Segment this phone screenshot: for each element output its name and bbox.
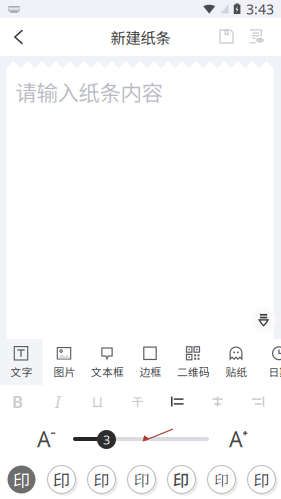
staticText: T — [133, 391, 141, 411]
button[interactable]: 图片 — [43, 339, 86, 385]
button[interactable]: B — [0, 387, 37, 415]
button[interactable]: Font style — [121, 462, 161, 496]
staticText: 图片 — [53, 364, 75, 379]
button[interactable]: 贴纸 — [215, 339, 258, 385]
staticText: 文字 — [10, 364, 32, 379]
button[interactable]: Align left — [157, 387, 197, 415]
button[interactable]: Font style — [1, 462, 41, 496]
staticText: 印 — [53, 467, 70, 492]
staticText: 日期 — [268, 364, 281, 379]
button[interactable]: Font style — [241, 462, 281, 496]
button[interactable]: Font style — [41, 462, 81, 496]
staticText: 文本框 — [91, 364, 124, 379]
staticText: 印 — [214, 469, 229, 490]
staticText: A — [229, 424, 243, 454]
button[interactable]: 文字 — [0, 339, 43, 385]
button[interactable]: Align center — [197, 387, 237, 415]
button[interactable]: 日期 — [258, 339, 281, 385]
button[interactable]: Font style — [201, 462, 241, 496]
button[interactable]: Font style — [81, 462, 121, 496]
button[interactable]: 文本框 — [86, 339, 129, 385]
button[interactable]: Align right — [237, 387, 277, 415]
button[interactable]: Collapse — [249, 306, 277, 334]
staticText: A — [37, 424, 51, 454]
staticText: 印 — [253, 468, 269, 491]
staticText: 印 — [13, 467, 30, 492]
staticText: 请输入纸条内容 — [15, 76, 162, 107]
staticText: I — [55, 390, 60, 413]
button[interactable]: Preview — [242, 20, 272, 54]
button[interactable]: Back — [0, 20, 34, 53]
button[interactable]: I — [37, 387, 77, 415]
button[interactable]: Font style — [161, 462, 201, 496]
staticText: U — [92, 391, 103, 411]
button[interactable]: Strikethrough — [117, 387, 157, 415]
staticText: 贴纸 — [225, 364, 247, 379]
staticText: 二维码 — [177, 364, 210, 379]
button[interactable]: Save — [212, 20, 242, 54]
staticText: 印 — [173, 467, 190, 491]
staticText: B — [12, 390, 23, 413]
button[interactable]: 边框 — [129, 339, 172, 385]
staticText: 新建纸条 — [110, 26, 170, 48]
button[interactable]: Underline — [77, 387, 117, 415]
staticText: 印 — [93, 468, 109, 491]
staticText: 3 — [103, 431, 110, 448]
staticText: 3:43 — [246, 0, 274, 19]
staticText: 边框 — [139, 364, 161, 379]
button[interactable]: 二维码 — [172, 339, 215, 385]
staticText: 印 — [133, 468, 149, 491]
